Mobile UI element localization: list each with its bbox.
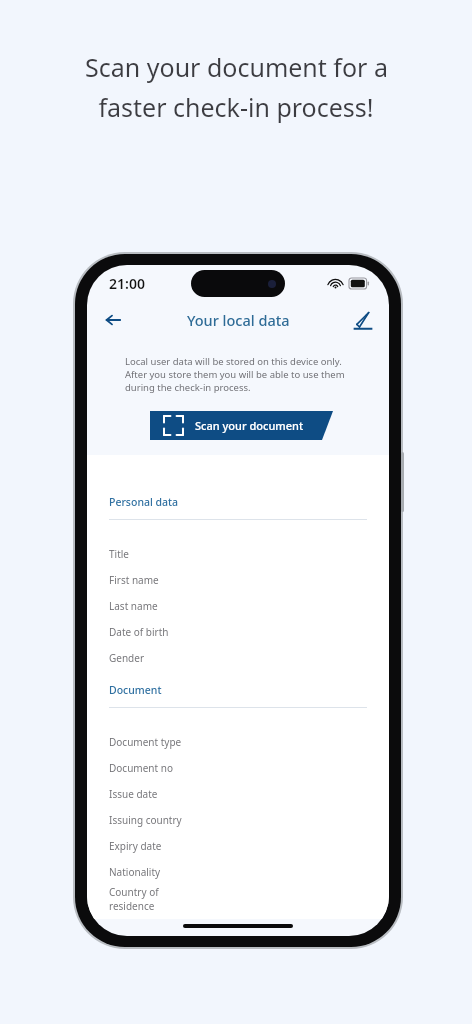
staticText: faster check-in process! [98,90,374,124]
staticText: Scan your document [195,418,304,433]
button[interactable]: Issue date [109,781,367,807]
button[interactable]: Nationality [109,859,367,885]
button[interactable]: Back [95,302,131,338]
staticText: Issuing country [109,813,182,827]
staticText: 21:00 [109,274,145,293]
button[interactable]: First name [109,567,367,593]
button[interactable]: Document type [109,729,367,755]
staticText: Country of [109,885,159,899]
staticText: during the check-in process. [125,381,251,394]
staticText: Local user data will be stored on this d… [125,355,342,368]
staticText: Your local data [187,310,290,330]
button[interactable]: Document no [109,755,367,781]
staticText: After you store them you will be able to… [125,368,345,381]
button[interactable]: Date of birth [109,619,367,645]
button[interactable]: Gender [109,645,367,671]
staticText: residence [109,899,155,913]
staticText: Document [109,683,162,697]
button[interactable]: Title [109,541,367,567]
button[interactable]: Edit [345,302,381,338]
button[interactable]: Last name [109,593,367,619]
staticText: Gender [109,651,145,665]
staticText: Title [109,547,129,561]
staticText: Document type [109,735,182,749]
staticText: Personal data [109,495,179,509]
button[interactable]: Scan your document [150,411,333,440]
button[interactable]: Expiry date [109,833,367,859]
staticText: Nationality [109,865,161,879]
button[interactable]: Issuing country [109,807,367,833]
staticText: First name [109,573,159,587]
staticText: Document no [109,761,173,775]
staticText: Expiry date [109,839,162,853]
staticText: Last name [109,599,158,613]
staticText: Issue date [109,787,158,801]
staticText: Scan your document for a [85,50,388,84]
staticText: Date of birth [109,625,169,639]
